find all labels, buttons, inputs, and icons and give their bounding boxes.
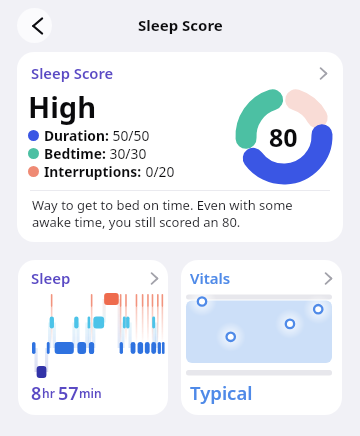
staticText: 50/50 [109, 126, 150, 144]
staticText: Sleep Score [138, 15, 223, 35]
staticText: min [79, 385, 102, 401]
staticText: Duration: [44, 126, 109, 144]
staticText: Typical [190, 380, 253, 405]
staticText: hr [42, 385, 58, 401]
button[interactable]: Sleep Score [17, 52, 343, 242]
staticText: Vitals [190, 268, 231, 288]
staticText: Bedtime: [44, 144, 106, 162]
button[interactable]: Back [17, 8, 52, 43]
staticText: 57 [58, 381, 79, 401]
staticText: Sleep Score [31, 63, 114, 83]
button[interactable]: Sleep [18, 260, 168, 415]
button[interactable]: Vitals [181, 260, 342, 415]
staticText: 8 [31, 381, 42, 401]
staticText: Sleep [31, 268, 71, 288]
staticText: 0/20 [142, 162, 175, 180]
staticText: High [28, 87, 97, 126]
staticText: Interruptions: [44, 162, 142, 180]
staticText: 30/30 [106, 144, 147, 162]
staticText: Way to get to bed on time. Even with som… [32, 196, 330, 231]
staticText: 80 [269, 120, 298, 154]
